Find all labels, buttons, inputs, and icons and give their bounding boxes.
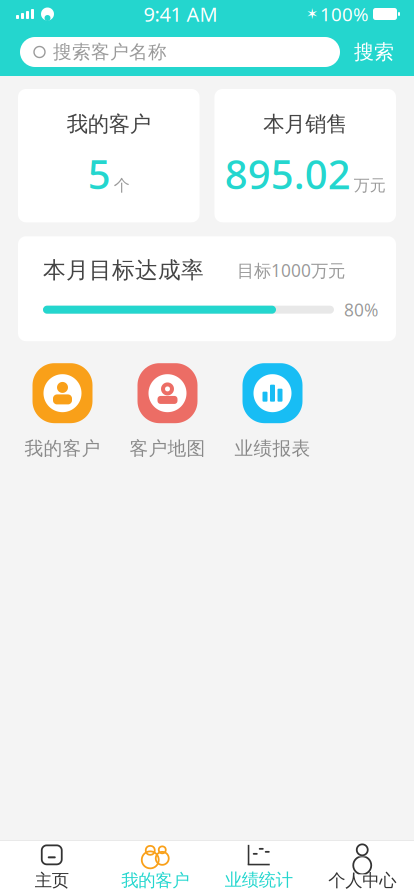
staticText: 100% [320,2,369,26]
staticText: 搜索 [354,40,394,64]
staticText: 业绩报表 [234,437,310,460]
button[interactable]: 搜索 [350,34,398,70]
staticText: 895.02 [225,147,351,200]
staticText: 本月目标达成率 [43,256,204,284]
button[interactable]: 个人中心 [310,836,414,896]
staticText: 客户地图 [129,437,205,460]
button[interactable]: 我的客户 [10,363,115,460]
staticText: 目标1000万元 [237,259,345,282]
staticText: 9:41 AM [143,1,217,27]
button[interactable]: 我的客户 [103,836,207,896]
staticText: 我的客户 [67,111,151,137]
staticText: 本月销售 [263,111,347,137]
staticText: 个 [114,176,130,195]
staticText: 搜索客户名称 [53,40,167,63]
staticText: 80% [344,298,378,321]
staticText: 我的客户 [24,437,100,460]
button[interactable]: 业绩报表 [220,363,325,460]
staticText: 万元 [354,176,386,195]
staticText: 我的客户 [121,870,189,891]
staticText: 个人中心 [328,870,396,891]
staticText: 5 [88,147,111,200]
button[interactable]: 主页 [0,836,103,896]
staticText: 业绩统计 [225,869,293,891]
button[interactable]: 客户地图 [115,363,220,460]
button[interactable]: 业绩统计 [207,836,310,896]
staticText: ✶ [306,6,318,22]
staticText: 主页 [35,870,69,891]
